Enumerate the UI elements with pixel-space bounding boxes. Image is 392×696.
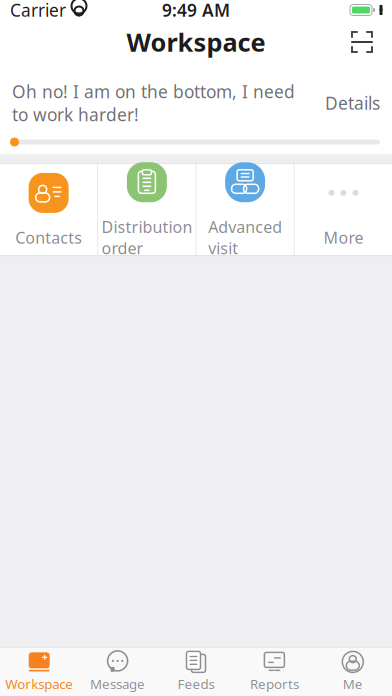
staticText: Feeds — [177, 675, 214, 693]
staticText: Details — [325, 91, 380, 114]
button[interactable]: Workspace — [0, 648, 78, 696]
staticText: Message — [90, 675, 145, 693]
staticText: Workspace — [126, 25, 265, 59]
staticText: Oh no! I am on the bottom, I need to wor… — [12, 80, 295, 126]
button[interactable]: Message — [78, 648, 157, 696]
staticText: 9:49 AM — [162, 0, 230, 21]
button[interactable]: Feeds — [157, 648, 235, 696]
staticText: Carrier — [10, 0, 66, 21]
button[interactable]: Contacts — [0, 164, 97, 255]
button[interactable]: More — [295, 164, 392, 255]
staticText: More — [323, 227, 363, 248]
button[interactable]: Scan — [340, 20, 384, 64]
button[interactable]: Advanced visit — [196, 164, 294, 255]
button[interactable]: Details — [315, 87, 380, 118]
button[interactable]: Distribution order — [98, 164, 195, 255]
staticText: Workspace — [5, 675, 73, 693]
staticText: Me — [343, 675, 363, 693]
button[interactable]: Me — [314, 648, 392, 696]
button[interactable]: Reports — [235, 648, 314, 696]
staticText: Reports — [250, 675, 299, 693]
staticText: Contacts — [15, 227, 82, 248]
staticText: Advanced visit — [208, 216, 282, 259]
staticText: Distribution order — [101, 216, 192, 259]
